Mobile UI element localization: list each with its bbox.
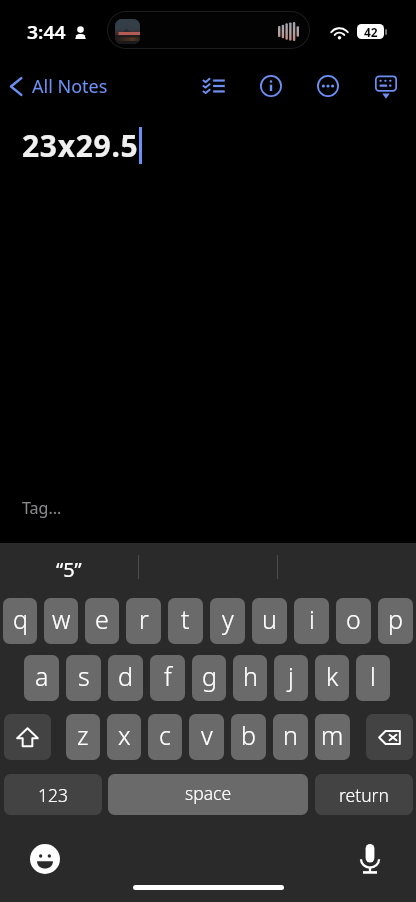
button[interactable]: Emoji keyboard (28, 842, 62, 876)
staticText: y (222, 602, 234, 636)
button[interactable]: All Notes (4, 68, 111, 105)
staticText: m (321, 718, 344, 752)
staticText: r (139, 602, 149, 636)
staticText: j (288, 659, 294, 693)
staticText: c (159, 718, 171, 752)
staticText: z (77, 718, 89, 752)
staticText: t (181, 602, 190, 636)
button[interactable]: p (378, 598, 413, 644)
button[interactable]: “5” (0, 543, 138, 591)
button[interactable]: d (108, 655, 143, 701)
staticText: return (339, 783, 389, 807)
staticText: u (262, 602, 277, 636)
button[interactable]: space (108, 774, 308, 815)
staticText: v (201, 718, 213, 752)
button[interactable]: b (231, 714, 266, 760)
button[interactable]: k (315, 655, 349, 701)
button[interactable]: Checklist (197, 69, 231, 103)
button[interactable]: n (273, 714, 308, 760)
button[interactable]: Shift (4, 714, 51, 760)
button[interactable]: return (315, 774, 413, 815)
staticText: x (118, 718, 131, 752)
staticText: d (118, 659, 133, 693)
staticText: o (346, 602, 361, 636)
button[interactable]: Info (254, 69, 288, 103)
staticText: 23x29.5 (22, 125, 139, 166)
button[interactable]: 123 (4, 774, 102, 815)
button[interactable]: f (150, 655, 185, 701)
staticText: w (52, 602, 71, 636)
staticText: Tag... (22, 497, 62, 519)
button[interactable]: e (85, 598, 119, 644)
button[interactable]: More options (311, 69, 345, 103)
staticText: l (370, 659, 376, 693)
button[interactable]: q (3, 598, 37, 644)
button[interactable]: m (315, 714, 350, 760)
button[interactable]: o (336, 598, 371, 644)
staticText: 3:44 (27, 21, 66, 44)
button[interactable]: t (168, 598, 203, 644)
staticText: All Notes (32, 74, 108, 99)
staticText: space (185, 781, 232, 805)
button[interactable]: a (24, 655, 59, 701)
staticText: i (309, 602, 315, 636)
button[interactable]: u (252, 598, 287, 644)
button[interactable]: Hide keyboard (369, 69, 403, 103)
button[interactable]: i (294, 598, 329, 644)
button[interactable]: c (148, 714, 182, 760)
button[interactable]: y (210, 598, 245, 644)
button[interactable]: Backspace (366, 714, 413, 760)
staticText: “5” (56, 556, 82, 583)
button[interactable]: w (44, 598, 78, 644)
staticText: p (388, 602, 403, 636)
staticText: s (78, 659, 90, 693)
staticText: h (243, 659, 258, 693)
staticText: g (202, 659, 217, 693)
button[interactable]: g (192, 655, 226, 701)
staticText: a (35, 659, 49, 693)
staticText: e (95, 602, 109, 636)
staticText: b (241, 718, 256, 752)
staticText: k (326, 659, 339, 693)
staticText: 42 (364, 24, 378, 39)
button[interactable]: h (233, 655, 267, 701)
button[interactable]: x (107, 714, 141, 760)
button[interactable]: z (66, 714, 100, 760)
staticText: n (283, 718, 298, 752)
button[interactable]: v (189, 714, 224, 760)
button[interactable]: Dictation (353, 842, 387, 876)
button[interactable]: r (126, 598, 161, 644)
staticText: f (164, 659, 172, 693)
button[interactable]: s (66, 655, 101, 701)
staticText: q (13, 602, 28, 636)
button[interactable]: j (274, 655, 308, 701)
staticText: 123 (38, 783, 68, 807)
button[interactable]: l (356, 655, 390, 701)
